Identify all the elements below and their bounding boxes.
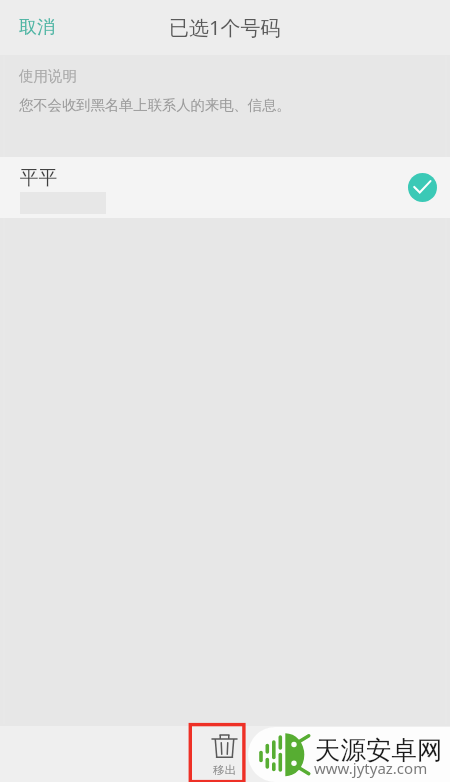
staticText: 您不会收到黑名单上联系人的来电、信息。 <box>19 96 291 114</box>
button[interactable]: 已选中 平平 <box>408 173 437 202</box>
staticText: 已选1个号码 <box>169 14 281 41</box>
staticText: 使用说明 <box>19 67 77 85</box>
staticText: 取消 <box>19 16 55 39</box>
staticText: www.jytyaz.com <box>314 758 428 778</box>
button[interactable]: 取消 <box>0 3 73 52</box>
button[interactable]: 移出 <box>196 726 252 782</box>
staticText: 天源安卓网 <box>315 734 443 766</box>
staticText: 移出 <box>213 763 236 777</box>
button[interactable]: 平平 <box>0 157 450 218</box>
staticText: 平平 <box>20 166 58 190</box>
